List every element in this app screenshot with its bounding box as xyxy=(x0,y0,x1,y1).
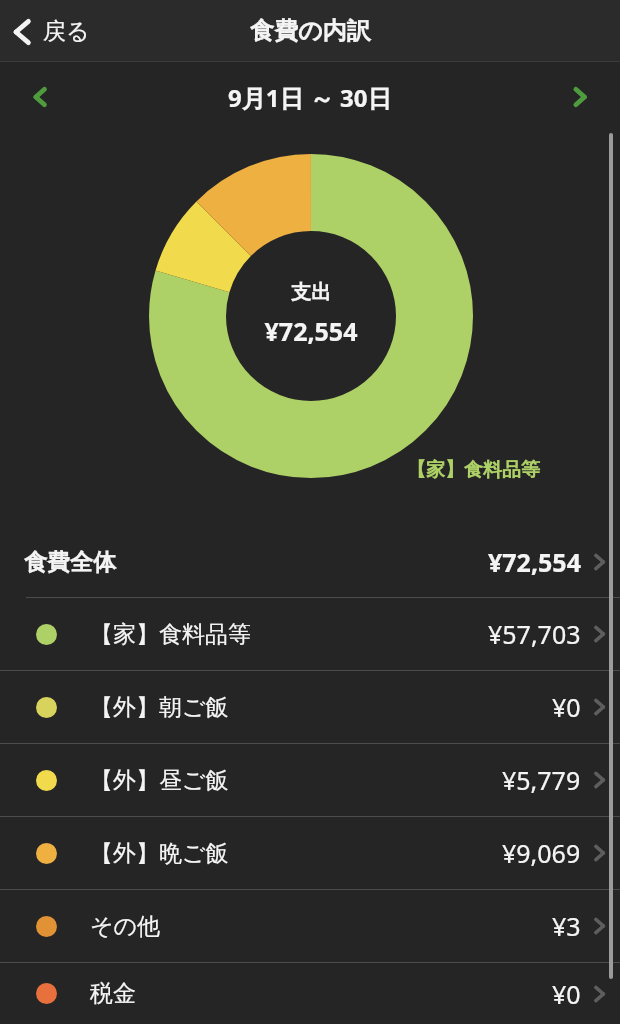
button[interactable]: 戻る xyxy=(0,9,108,54)
staticText: 【外】晩ご飯 xyxy=(90,839,229,868)
staticText: 9月1日 ～ 30日 xyxy=(228,81,392,114)
staticText: ¥0 xyxy=(552,977,581,1011)
staticText: 【家】食料品等 xyxy=(90,620,251,649)
staticText: 支出 xyxy=(231,280,391,305)
staticText: ¥0 xyxy=(552,690,581,724)
staticText: 戻る xyxy=(43,17,90,46)
button[interactable]: 税金 xyxy=(0,963,620,1024)
button[interactable]: その他 xyxy=(0,890,620,962)
staticText: ¥3 xyxy=(552,909,581,943)
staticText: その他 xyxy=(90,912,161,941)
staticText: ¥57,703 xyxy=(488,617,581,651)
button[interactable]: 食費全体 xyxy=(0,527,620,597)
button[interactable]: 【外】昼ご飯 xyxy=(0,744,620,816)
button[interactable]: Next period xyxy=(552,69,608,125)
staticText: ¥9,069 xyxy=(502,836,581,870)
staticText: ¥5,779 xyxy=(502,763,581,797)
staticText: 食費全体 xyxy=(24,548,116,577)
staticText: 【外】朝ご飯 xyxy=(90,693,229,722)
staticText: 【家】食料品等 xyxy=(407,458,540,482)
button[interactable]: 【外】晩ご飯 xyxy=(0,817,620,889)
button[interactable]: 【外】朝ご飯 xyxy=(0,671,620,743)
staticText: 税金 xyxy=(90,979,136,1008)
staticText: ¥72,554 xyxy=(231,314,391,348)
button[interactable]: 【家】食料品等 xyxy=(0,598,620,670)
button[interactable]: Previous period xyxy=(12,69,68,125)
staticText: 食費の内訳 xyxy=(250,16,371,46)
staticText: 【外】昼ご飯 xyxy=(90,766,229,795)
staticText: ¥72,554 xyxy=(488,545,581,579)
